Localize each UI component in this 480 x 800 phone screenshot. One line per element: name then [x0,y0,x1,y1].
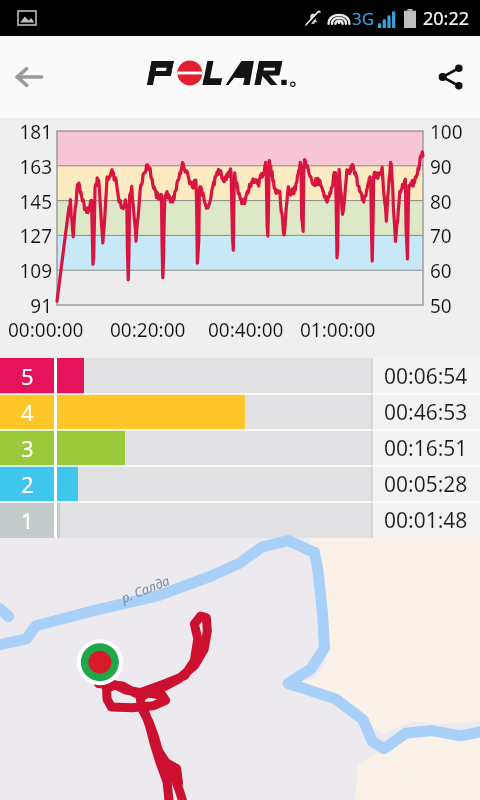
staticText: 60 [430,258,452,284]
staticText: 1 [21,505,34,535]
button[interactable]: 1 [0,502,480,538]
button[interactable]: Back [0,48,58,106]
staticText: 181 [0,119,52,145]
button[interactable]: 4 [0,394,480,430]
staticText: 3G [352,7,375,30]
staticText: 00:06:54 [384,362,468,391]
staticText: 90 [430,154,452,180]
staticText: 01:00:00 [300,317,376,343]
staticText: 50 [430,293,452,319]
staticText: 91 [0,293,52,319]
staticText: 3 [21,433,34,463]
button[interactable]: Share [422,48,480,106]
staticText: 4 [21,397,34,427]
staticText: 20:22 [423,6,470,31]
staticText: 80 [430,189,452,215]
staticText: 5 [21,361,34,391]
staticText: 145 [0,189,52,215]
staticText: 127 [0,223,52,249]
staticText: 00:16:51 [384,434,468,463]
button[interactable]: Route map [0,538,480,800]
staticText: 00:05:28 [384,470,468,499]
staticText: 70 [430,223,452,249]
staticText: р. Салда [118,571,172,607]
staticText: 00:40:00 [208,317,284,343]
staticText: 00:00:00 [8,317,84,343]
staticText: 00:01:48 [384,506,468,535]
button[interactable]: 3 [0,430,480,466]
staticText: 2 [21,469,34,499]
staticText: 100 [430,119,463,145]
button[interactable]: 2 [0,466,480,502]
staticText: 00:46:53 [384,398,468,427]
staticText: 109 [0,258,52,284]
button[interactable]: 5 [0,358,480,394]
staticText: 163 [0,154,52,180]
staticText: 00:20:00 [110,317,186,343]
